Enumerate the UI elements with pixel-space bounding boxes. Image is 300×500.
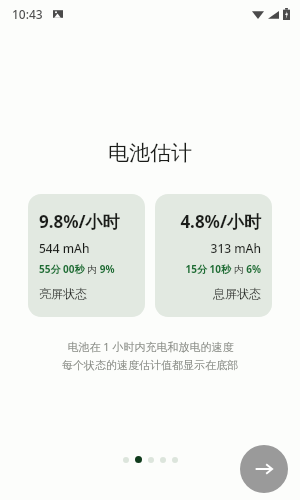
- button[interactable]: 9.8%/小时: [28, 194, 145, 317]
- staticText: 4.8%/小时: [180, 210, 261, 233]
- staticText: 每个状态的速度估计值都显示在底部: [62, 358, 238, 372]
- staticText: 9.8%/小时: [39, 210, 120, 233]
- staticText: 亮屏状态: [39, 286, 87, 301]
- staticText: 544 mAh: [39, 240, 90, 256]
- staticText: 313 mAh: [210, 240, 261, 256]
- staticText: 55分 00秒 内 9%: [39, 262, 115, 276]
- button[interactable]: Next: [240, 445, 288, 493]
- staticText: 15分 10秒 内 6%: [185, 262, 261, 276]
- staticText: 息屏状态: [213, 286, 261, 301]
- staticText: 10:43: [12, 6, 43, 22]
- staticText: 电池估计: [108, 140, 192, 166]
- staticText: 电池在 1 小时内充电和放电的速度: [67, 339, 234, 354]
- button[interactable]: 4.8%/小时: [155, 194, 272, 317]
